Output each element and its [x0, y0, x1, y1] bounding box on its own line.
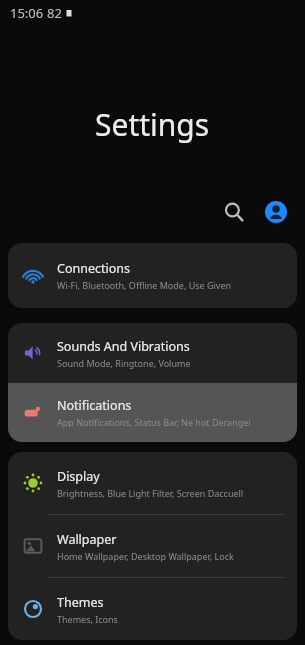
staticText: Display: [57, 468, 100, 485]
staticText: Sound Mode, Ringtone, Volume: [57, 357, 191, 369]
staticText: Themes: [57, 594, 104, 611]
staticText: 82: [47, 4, 62, 22]
button[interactable]: Display: [8, 452, 297, 514]
staticText: Sounds And Vibrations: [57, 338, 190, 355]
staticText: Wi-Fi, Bluetooth, Offline Mode, Use Give…: [57, 279, 232, 291]
button[interactable]: Wallpaper: [8, 515, 297, 577]
button[interactable]: Notifications: [8, 383, 297, 442]
button[interactable]: Connections: [8, 243, 297, 308]
staticText: Themes, Icons: [57, 613, 118, 625]
staticText: Brightness, Blue Light Filter, Screen Da…: [57, 487, 244, 499]
staticText: Wallpaper: [57, 531, 117, 548]
staticText: 15:06: [10, 4, 44, 22]
staticText: Connections: [57, 260, 130, 277]
staticText: Home Wallpaper, Desktop Wallpaper, Lock: [57, 550, 234, 562]
staticText: Notifications: [57, 397, 132, 414]
button[interactable]: Search: [217, 195, 251, 229]
button[interactable]: Sounds And Vibrations: [8, 323, 297, 383]
staticText: Settings: [95, 104, 210, 145]
button[interactable]: Account: [261, 197, 291, 227]
button[interactable]: Themes: [8, 578, 297, 640]
staticText: App Notifications, Status Bar, Ne hot De…: [57, 416, 251, 428]
